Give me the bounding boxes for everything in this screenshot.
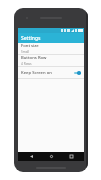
staticText: 4 Rows: [21, 62, 32, 66]
staticText: Small: [21, 50, 30, 54]
button[interactable]: Font size: [18, 43, 84, 54]
button[interactable]: Back: [24, 152, 38, 161]
staticText: Font size: [21, 43, 39, 49]
staticText: Buttons Row: [21, 55, 47, 61]
button[interactable]: Keep Screen on toggle: [73, 70, 81, 75]
button[interactable]: Home: [44, 152, 58, 161]
button[interactable]: Recents: [64, 152, 78, 161]
staticText: Keep Screen on: [21, 70, 73, 76]
button[interactable]: Buttons Row: [18, 55, 84, 66]
button[interactable]: Keep Screen on: [18, 67, 84, 78]
staticText: Settings: [21, 35, 41, 42]
